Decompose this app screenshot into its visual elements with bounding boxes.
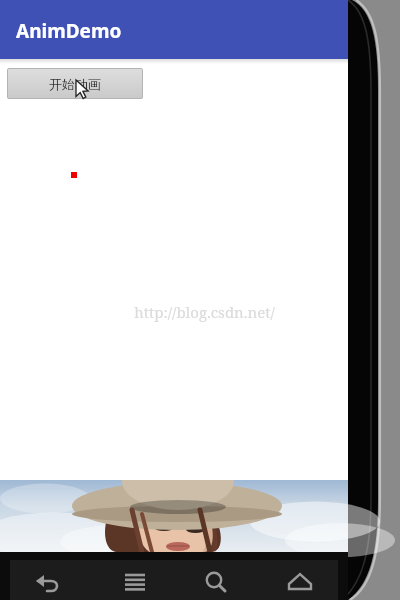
staticText: http://blog.csdn.net/ [134, 302, 275, 322]
button[interactable]: Back [24, 564, 72, 600]
button[interactable]: AnimDemo [0, 0, 348, 59]
button[interactable]: Search [191, 564, 239, 600]
staticText: 开始动画 [49, 76, 101, 92]
staticText: AnimDemo [16, 18, 122, 44]
button[interactable]: 开始动画 [7, 68, 143, 99]
button[interactable]: Home [276, 564, 324, 600]
button[interactable]: Menu [111, 564, 159, 600]
